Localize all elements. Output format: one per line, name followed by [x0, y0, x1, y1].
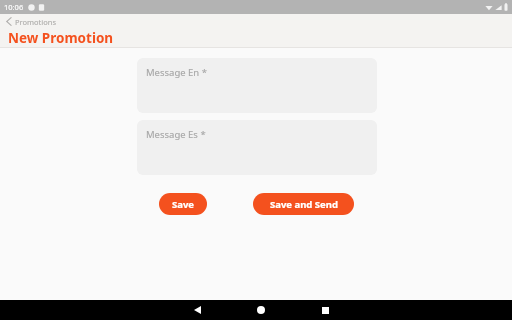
- staticText: 10:06: [4, 2, 24, 12]
- other: Back: [6, 17, 12, 26]
- staticText: Promotions: [15, 17, 56, 27]
- button[interactable]: Save and Send: [253, 193, 354, 215]
- staticText: Save: [172, 198, 195, 211]
- button[interactable]: Back: [0, 14, 56, 29]
- button[interactable]: Message Es *: [137, 120, 377, 175]
- staticText: Save and Send: [270, 198, 338, 211]
- button[interactable]: Message En *: [137, 58, 377, 113]
- button[interactable]: Recent apps: [314, 300, 336, 320]
- button[interactable]: Back: [186, 300, 208, 320]
- staticText: Message En *: [146, 66, 207, 79]
- button[interactable]: Home: [250, 300, 272, 320]
- staticText: New Promotion: [8, 29, 114, 47]
- button[interactable]: Save: [159, 193, 207, 215]
- staticText: Message Es *: [146, 128, 206, 141]
